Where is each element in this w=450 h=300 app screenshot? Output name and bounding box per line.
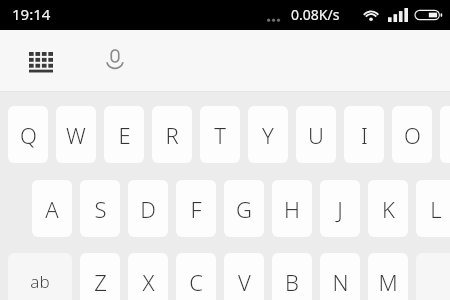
staticText: Z [94, 267, 107, 297]
button[interactable]: X [128, 253, 168, 300]
staticText: I [361, 120, 368, 150]
button[interactable]: J [320, 180, 360, 237]
button[interactable]: Keyboard input [20, 40, 62, 82]
button[interactable]: C [176, 253, 216, 300]
button[interactable]: Z [80, 253, 120, 300]
button[interactable]: G [224, 180, 264, 237]
staticText: O [404, 120, 421, 150]
staticText: Q [20, 120, 37, 150]
button[interactable]: L [416, 180, 450, 237]
staticText: 0.08K/s [291, 5, 340, 24]
button[interactable]: V [224, 253, 264, 300]
staticText: W [66, 120, 86, 150]
staticText: A [45, 194, 59, 224]
staticText: B [285, 267, 299, 297]
button[interactable]: M [368, 253, 408, 300]
button[interactable]: N [320, 253, 360, 300]
button[interactable]: R [152, 106, 192, 163]
staticText: U [308, 120, 324, 150]
button[interactable]: I [344, 106, 384, 163]
button[interactable]: T [200, 106, 240, 163]
staticText: J [337, 194, 343, 224]
staticText: N [332, 267, 349, 297]
button[interactable]: B [272, 253, 312, 300]
button[interactable]: Voice input [94, 40, 136, 82]
button[interactable]: ab [8, 253, 72, 300]
button[interactable]: W [56, 106, 96, 163]
button[interactable]: A [32, 180, 72, 237]
staticText: L [430, 194, 442, 224]
staticText: H [284, 194, 300, 224]
button[interactable]: D [128, 180, 168, 237]
staticText: Y [262, 120, 274, 150]
staticText: G [236, 194, 252, 224]
button[interactable]: H [272, 180, 312, 237]
staticText: D [140, 194, 156, 224]
staticText: F [190, 194, 202, 224]
staticText: S [94, 194, 107, 224]
button[interactable]: K [368, 180, 408, 237]
staticText: T [214, 120, 226, 150]
staticText: K [382, 194, 395, 224]
button[interactable]: F [176, 180, 216, 237]
staticText: M [378, 267, 398, 297]
staticText: X [142, 267, 155, 297]
button[interactable]: Q [8, 106, 48, 163]
button[interactable]: U [296, 106, 336, 163]
staticText: E [118, 120, 131, 150]
button[interactable]: O [392, 106, 432, 163]
staticText: 19:14 [12, 4, 51, 24]
staticText: C [189, 267, 203, 297]
button[interactable]: Y [248, 106, 288, 163]
staticText: R [165, 120, 179, 150]
staticText: V [238, 267, 251, 297]
staticText: ab [30, 270, 50, 293]
button[interactable]: S [80, 180, 120, 237]
button[interactable]: E [104, 106, 144, 163]
